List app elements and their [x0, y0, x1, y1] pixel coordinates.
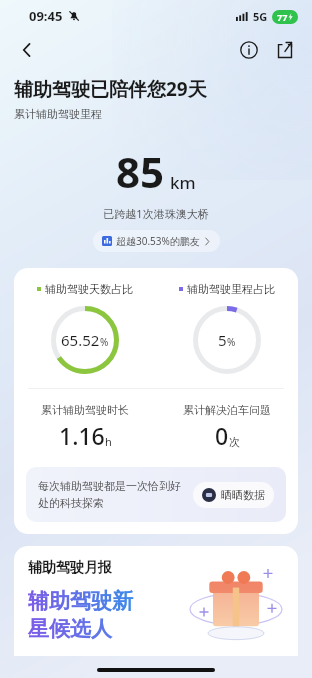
staticText: 晒晒数据 [221, 488, 265, 502]
staticText: 1.16 [59, 420, 105, 451]
button[interactable]: Share [268, 33, 302, 67]
staticText: km [170, 171, 196, 194]
staticText: 辅助驾驶月报 [28, 559, 112, 577]
staticText: 85 [116, 143, 165, 200]
staticText: 65.52 [61, 330, 100, 350]
button[interactable]: 晒晒数据 [193, 482, 274, 508]
staticText: 次 [229, 435, 240, 449]
staticText: 5G [253, 9, 268, 24]
staticText: 星候选人 [28, 616, 112, 642]
button[interactable]: Info [232, 33, 266, 67]
staticText: 5 [218, 330, 227, 350]
staticText: 辅助驾驶里程占比 [187, 282, 275, 296]
staticText: 超越30.53%的鹏友 [116, 234, 200, 248]
button[interactable]: Back [10, 33, 44, 67]
staticText: 0 [215, 420, 229, 451]
staticText: 已跨越1次港珠澳大桥 [0, 206, 312, 221]
staticText: 辅助驾驶天数占比 [45, 282, 133, 296]
staticText: 累计辅助驾驶里程 [14, 107, 102, 121]
staticText: 累计解决泊车问题 [183, 403, 271, 417]
staticText: 辅助驾驶已陪伴您29天 [14, 76, 207, 102]
staticText: 77 [277, 11, 288, 23]
button[interactable]: 超越30.53%的鹏友 [93, 230, 220, 252]
staticText: % [227, 335, 236, 349]
staticText: 累计辅助驾驶时长 [41, 403, 129, 417]
staticText: 辅助驾驶新 [28, 588, 133, 614]
staticText: 每次辅助驾驶都是一次恰到好处的科技探索 [38, 479, 185, 510]
button[interactable]: 辅助驾驶月报 [14, 546, 298, 656]
staticText: % [100, 335, 109, 349]
staticText: 09:45 [29, 7, 63, 25]
staticText: h [105, 434, 112, 449]
